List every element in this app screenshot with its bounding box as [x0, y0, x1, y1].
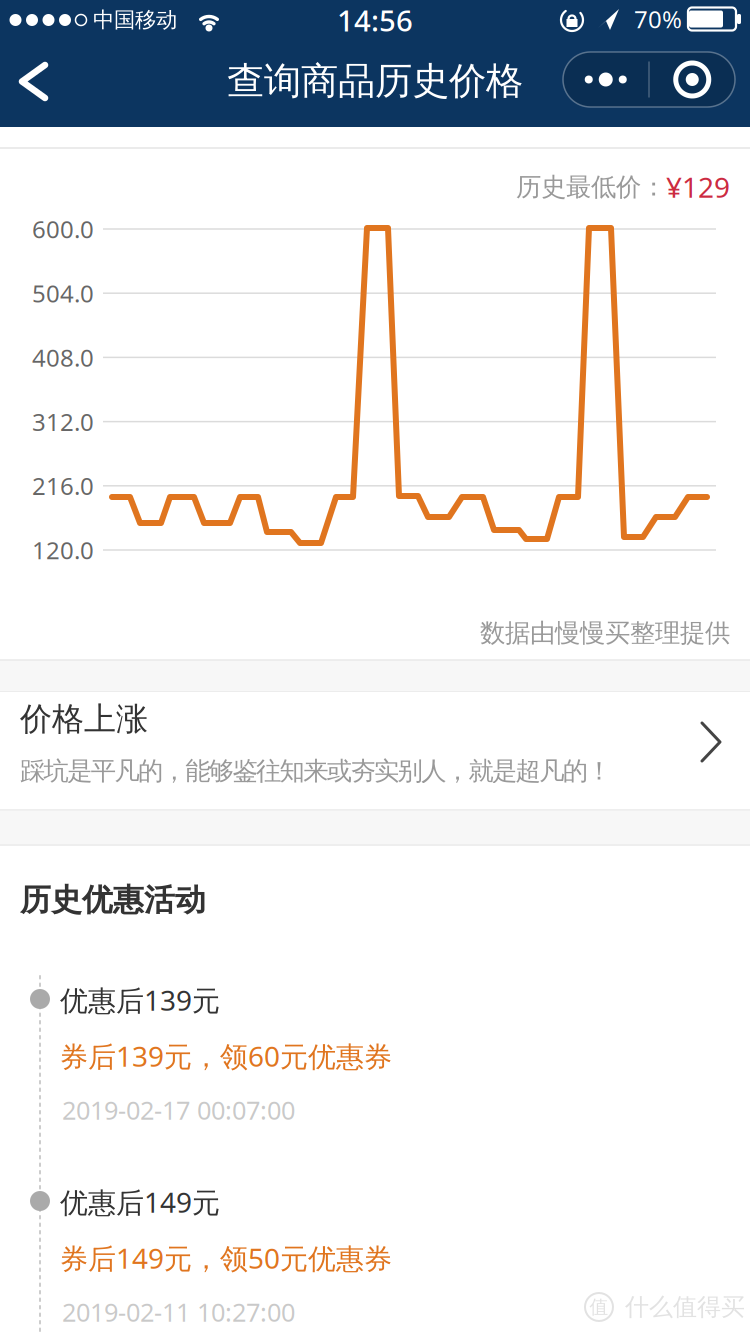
staticText: 600.0: [32, 213, 94, 245]
staticText: 504.0: [32, 277, 94, 309]
button[interactable]: 关闭: [650, 52, 735, 107]
button[interactable]: 更多: [563, 52, 648, 107]
staticText: 70%: [634, 3, 682, 35]
staticText: 2019-02-17 00:07:00: [62, 1093, 295, 1127]
staticText: 券后149元，领50元优惠券: [60, 1239, 392, 1277]
staticText: 408.0: [32, 341, 94, 373]
staticText: 中国移动: [93, 7, 177, 33]
staticText: 价格上涨: [20, 699, 148, 739]
staticText: 312.0: [32, 406, 94, 438]
staticText: 120.0: [32, 534, 94, 566]
button[interactable]: 价格上涨: [0, 692, 750, 810]
staticText: 什么值得买: [625, 1292, 745, 1322]
staticText: 踩坑是平凡的，能够鉴往知来或夯实别人，就是超凡的！: [20, 755, 611, 786]
staticText: 查询商品历史价格: [227, 58, 523, 104]
staticText: 14:56: [337, 0, 413, 39]
staticText: 值: [589, 1295, 608, 1318]
staticText: ¥129: [666, 168, 730, 206]
staticText: 216.0: [32, 470, 94, 502]
button[interactable]: 返回: [6, 49, 70, 113]
staticText: 优惠后149元: [60, 1183, 220, 1221]
staticText: 数据由慢慢买整理提供: [480, 617, 730, 648]
staticText: 2019-02-11 10:27:00: [62, 1295, 295, 1329]
staticText: 券后139元，领60元优惠券: [60, 1037, 392, 1075]
staticText: 优惠后139元: [60, 981, 220, 1019]
staticText: 历史优惠活动: [20, 881, 206, 919]
staticText: 历史最低价：: [516, 171, 666, 202]
